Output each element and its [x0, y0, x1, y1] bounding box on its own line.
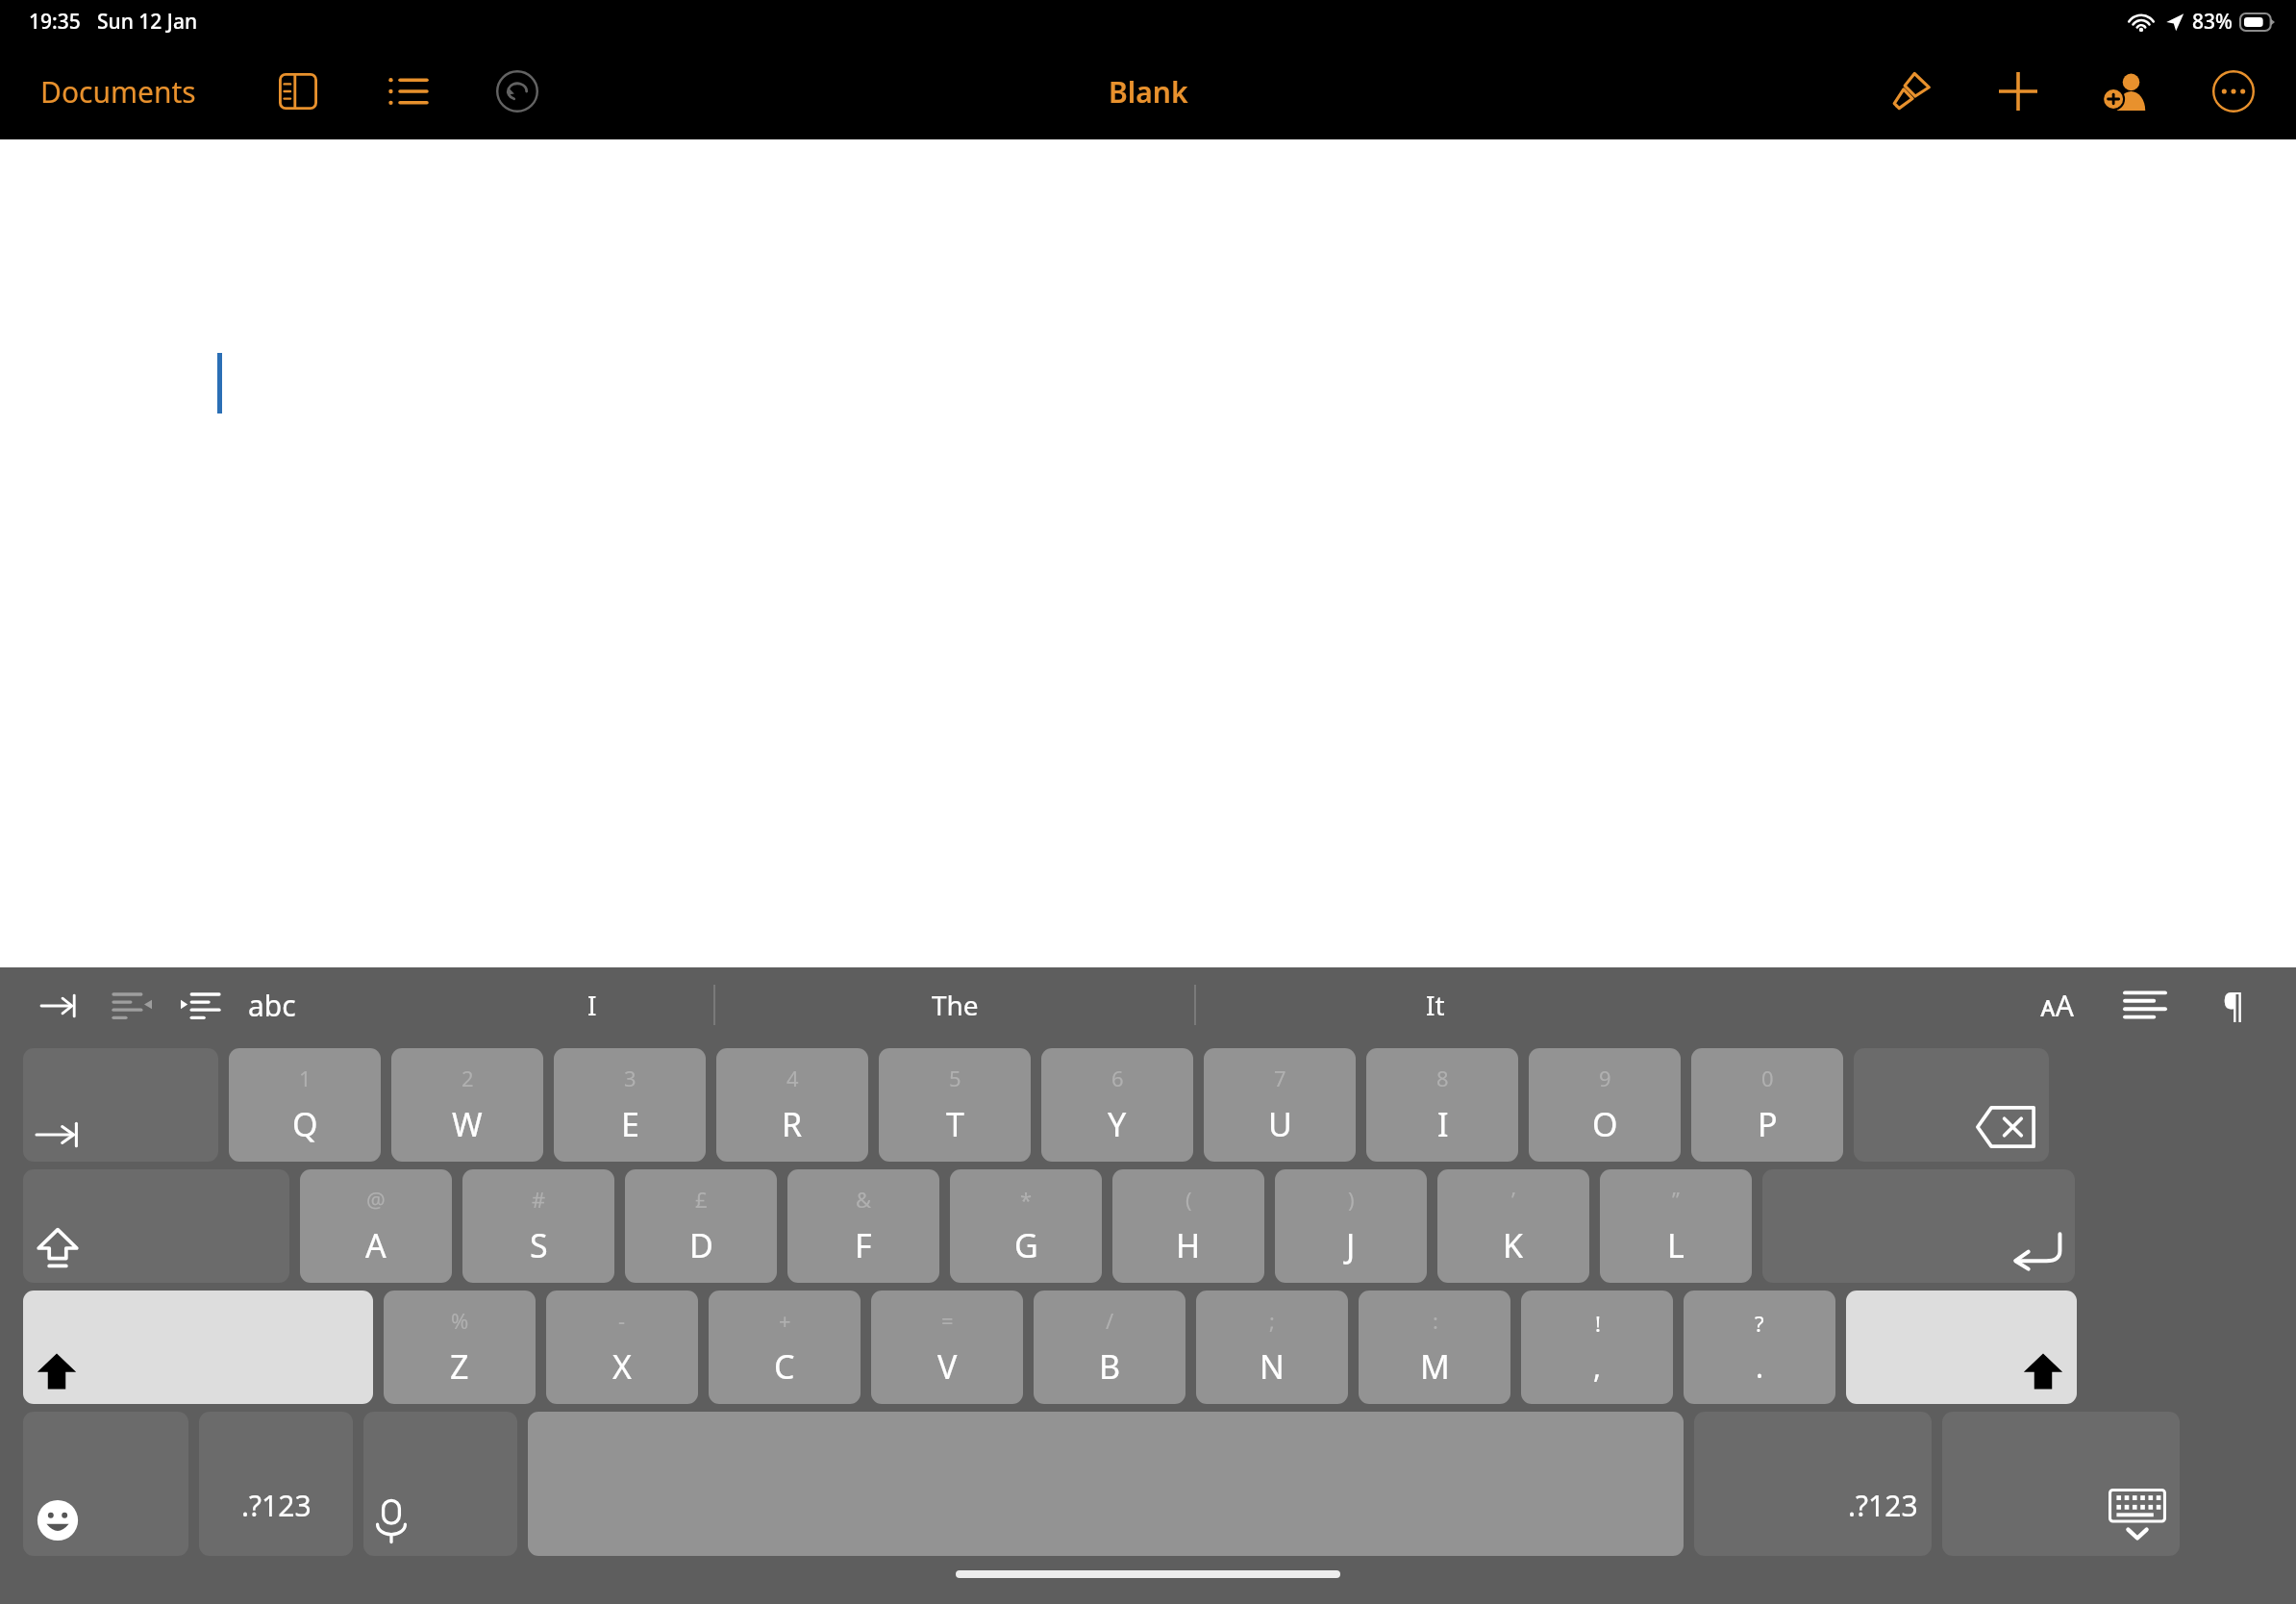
button[interactable]: ; — [1196, 1291, 1348, 1404]
button[interactable]: It — [1196, 967, 1675, 1042]
button[interactable]: 9 — [1529, 1048, 1681, 1162]
button[interactable]: Undo — [487, 61, 548, 122]
staticText: .?123 — [1848, 1486, 1918, 1525]
button[interactable]: 7 — [1204, 1048, 1356, 1162]
button[interactable]: Return — [1762, 1169, 2075, 1283]
button[interactable]: I — [471, 967, 713, 1042]
staticText: ’ — [1511, 1185, 1515, 1214]
button[interactable]: 2 — [391, 1048, 543, 1162]
button[interactable]: Insert — [1984, 58, 2052, 125]
button[interactable]: = — [871, 1291, 1023, 1404]
staticText: ? — [1755, 1309, 1764, 1338]
button[interactable]: Shift — [1846, 1291, 2077, 1404]
staticText: Sun 12 Jan — [97, 8, 198, 36]
button[interactable]: Emoji — [23, 1412, 188, 1556]
staticText: ( — [1185, 1185, 1192, 1214]
button[interactable]: ) — [1275, 1169, 1427, 1283]
staticText: 4 — [786, 1064, 799, 1092]
button[interactable]: ? — [1684, 1291, 1835, 1404]
button[interactable]: Indent — [175, 981, 225, 1031]
button[interactable]: / — [1034, 1291, 1185, 1404]
staticText: T — [946, 1102, 964, 1146]
staticText: W — [452, 1102, 483, 1146]
button[interactable]: Outdent — [108, 981, 158, 1031]
staticText: J — [1346, 1223, 1356, 1267]
button[interactable]: # — [462, 1169, 614, 1283]
staticText: The — [932, 987, 979, 1023]
button[interactable]: Text size — [2029, 977, 2084, 1033]
staticText: O — [1592, 1102, 1618, 1146]
button[interactable]: Hide keyboard — [1942, 1412, 2180, 1556]
button[interactable]: 8 — [1366, 1048, 1518, 1162]
staticText: D — [689, 1223, 713, 1267]
staticText: 19:35 — [29, 8, 81, 36]
button[interactable]: + — [709, 1291, 861, 1404]
button[interactable]: Tab — [23, 1048, 218, 1162]
button[interactable]: £ — [625, 1169, 777, 1283]
staticText: 6 — [1111, 1064, 1124, 1092]
button[interactable]: 4 — [716, 1048, 868, 1162]
button[interactable]: ( — [1112, 1169, 1264, 1283]
button[interactable]: Numbers — [199, 1412, 353, 1556]
staticText: ” — [1672, 1185, 1680, 1214]
button[interactable]: 5 — [879, 1048, 1031, 1162]
button[interactable]: Paragraph — [2206, 977, 2261, 1033]
button[interactable]: 1 — [229, 1048, 381, 1162]
staticText: E — [621, 1102, 639, 1146]
button[interactable]: 3 — [554, 1048, 706, 1162]
staticText: 83% — [2192, 8, 2233, 36]
button[interactable]: Dictation — [363, 1412, 517, 1556]
staticText: = — [941, 1306, 954, 1335]
staticText: Documents — [40, 72, 196, 112]
button[interactable]: * — [950, 1169, 1102, 1283]
staticText: : — [1433, 1306, 1438, 1335]
staticText: P — [1758, 1102, 1778, 1146]
staticText: ᴀA — [2040, 986, 2074, 1025]
button[interactable]: : — [1359, 1291, 1510, 1404]
button[interactable]: Delete — [1854, 1048, 2049, 1162]
staticText: + — [779, 1306, 791, 1335]
button[interactable]: ’ — [1437, 1169, 1589, 1283]
staticText: , — [1593, 1347, 1602, 1387]
button[interactable]: ” — [1600, 1169, 1752, 1283]
button[interactable]: 0 — [1691, 1048, 1843, 1162]
staticText: U — [1268, 1102, 1292, 1146]
staticText: M — [1420, 1344, 1450, 1389]
button[interactable]: Format — [1877, 58, 1944, 125]
staticText: ¶ — [2223, 983, 2245, 1027]
staticText: 0 — [1761, 1064, 1774, 1092]
staticText: * — [1020, 1185, 1033, 1214]
button[interactable]: Alignment — [2117, 977, 2173, 1033]
button[interactable]: Documents — [23, 63, 213, 121]
staticText: 7 — [1274, 1064, 1286, 1092]
button[interactable]: - — [546, 1291, 698, 1404]
button[interactable]: Blank — [1109, 72, 1188, 112]
button[interactable]: View options — [267, 61, 329, 122]
button[interactable]: The — [715, 967, 1194, 1042]
button[interactable]: More — [2200, 58, 2267, 125]
button[interactable]: Tab — [35, 981, 85, 1031]
button[interactable]: Collaborate — [2092, 58, 2159, 125]
button[interactable]: @ — [300, 1169, 452, 1283]
button[interactable]: Caps lock — [23, 1169, 289, 1283]
staticText: 2 — [462, 1064, 474, 1092]
staticText: G — [1014, 1223, 1038, 1267]
button[interactable]: 6 — [1041, 1048, 1193, 1162]
button[interactable]: % — [384, 1291, 536, 1404]
staticText: abc — [248, 986, 296, 1025]
button[interactable]: abc — [240, 978, 304, 1033]
staticText: 8 — [1436, 1064, 1449, 1092]
staticText: Y — [1108, 1102, 1127, 1146]
button[interactable]: Numbers — [1694, 1412, 1932, 1556]
button[interactable]: Table of contents — [377, 61, 438, 122]
staticText: ! — [1595, 1309, 1601, 1338]
button[interactable]: ! — [1521, 1291, 1673, 1404]
staticText: X — [612, 1344, 632, 1389]
staticText: & — [856, 1185, 872, 1214]
staticText: I — [1437, 1102, 1449, 1146]
button[interactable]: Shift — [23, 1291, 373, 1404]
button[interactable]: & — [787, 1169, 939, 1283]
staticText: 1 — [299, 1064, 312, 1092]
staticText: .?123 — [241, 1486, 312, 1525]
